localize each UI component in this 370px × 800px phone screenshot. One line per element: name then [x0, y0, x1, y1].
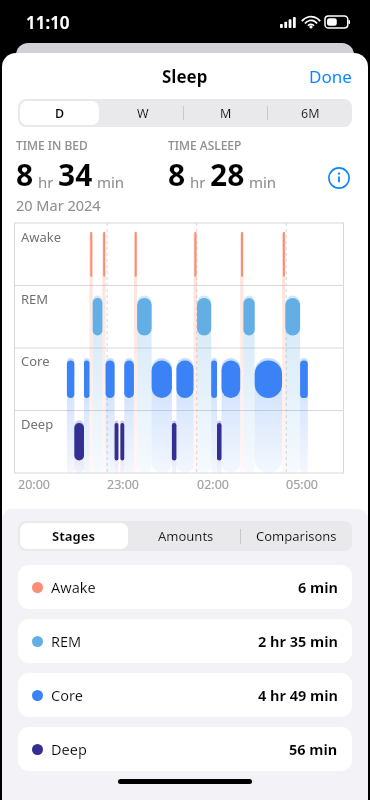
staticText: Stages [52, 527, 96, 545]
staticText: 02:00 [197, 476, 229, 493]
staticText: hr [34, 172, 58, 192]
button[interactable]: W [103, 101, 182, 125]
staticText: Awake [51, 577, 96, 597]
staticText: 20 Mar 2024 [16, 195, 101, 215]
staticText: REM [21, 290, 49, 308]
button[interactable]: Awake [18, 565, 352, 609]
staticText: 11:10 [26, 11, 70, 34]
staticText: Awake [21, 228, 62, 246]
staticText: min [93, 172, 125, 192]
staticText: Amounts [158, 527, 214, 545]
staticText: 4 hr 49 min [258, 685, 338, 705]
staticText: 34 [58, 154, 93, 195]
staticText: TIME ASLEEP [168, 137, 242, 153]
staticText: 6M [301, 105, 320, 122]
staticText: M [220, 105, 232, 122]
staticText: Deep [21, 415, 54, 433]
staticText: D [55, 105, 65, 122]
staticText: 6 min [298, 577, 338, 597]
staticText: Comparisons [256, 527, 337, 545]
staticText: 8 [16, 154, 34, 195]
staticText: Core [51, 685, 83, 705]
staticText: 23:00 [107, 476, 139, 493]
staticText: W [137, 105, 149, 122]
staticText: 20:00 [18, 476, 50, 493]
button[interactable]: Amounts [132, 523, 239, 549]
staticText: Done [309, 65, 352, 88]
staticText: Sleep [162, 65, 208, 88]
staticText: Deep [51, 739, 87, 759]
staticText: 8 [168, 154, 186, 195]
button[interactable]: Deep [18, 727, 352, 771]
button[interactable]: M [186, 101, 266, 125]
staticText: REM [51, 631, 82, 651]
button[interactable]: Comparisons [243, 523, 350, 549]
staticText: min [245, 172, 277, 192]
staticText: 28 [210, 154, 245, 195]
staticText: Core [21, 352, 50, 370]
button[interactable]: Stages [20, 523, 128, 549]
button[interactable]: REM [18, 619, 352, 663]
staticText: 05:00 [286, 476, 318, 493]
button[interactable]: D [20, 101, 99, 125]
button[interactable]: Information [324, 163, 354, 193]
button[interactable]: Done [293, 57, 368, 96]
staticText: 56 min [289, 739, 338, 759]
button[interactable]: Core [18, 673, 352, 717]
staticText: TIME IN BED [16, 137, 88, 153]
staticText: 2 hr 35 min [258, 631, 338, 651]
staticText: hr [186, 172, 210, 192]
button[interactable]: 6M [270, 101, 350, 125]
